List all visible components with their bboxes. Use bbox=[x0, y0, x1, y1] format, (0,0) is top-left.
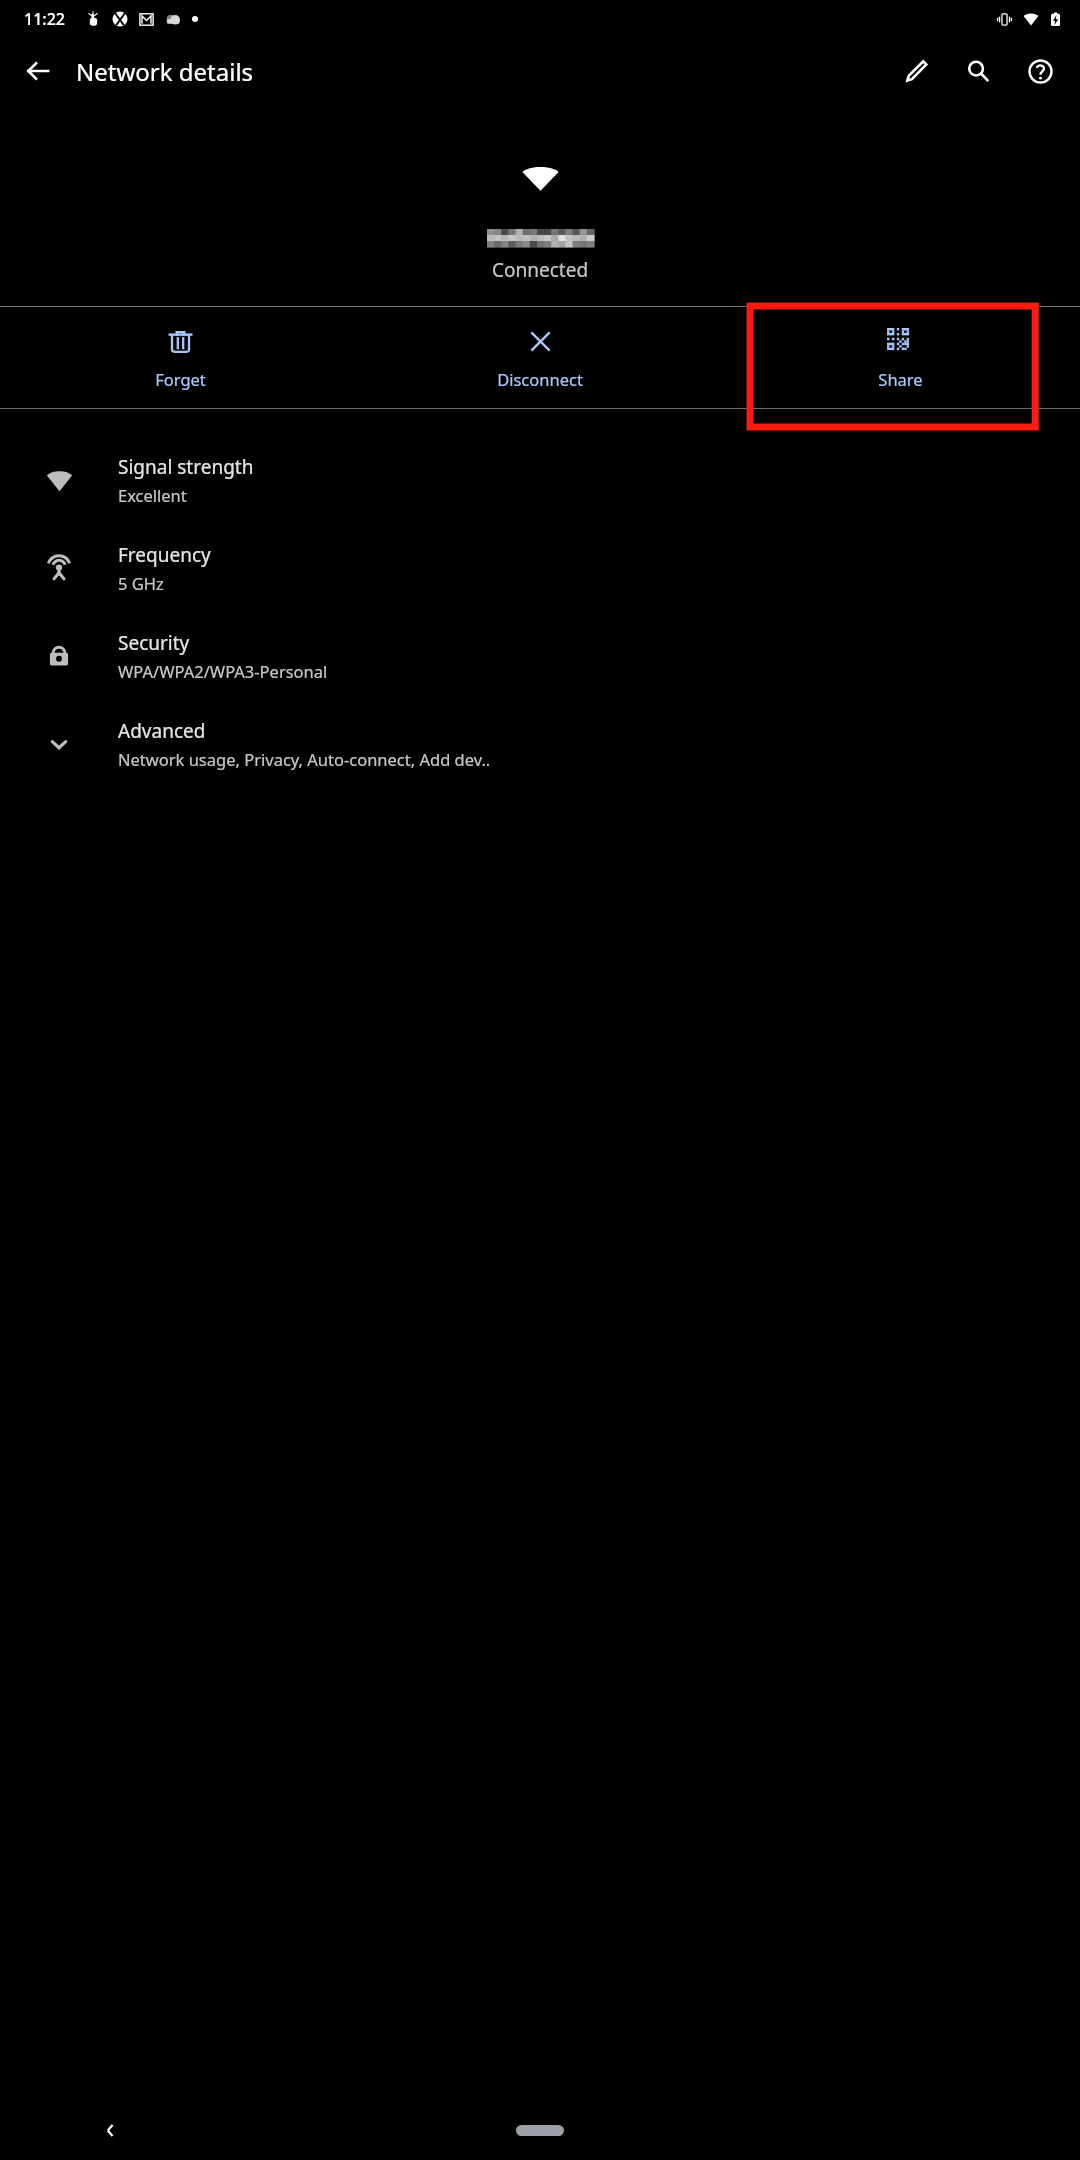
staticText: Network details bbox=[76, 55, 254, 88]
staticText: Disconnect bbox=[497, 368, 583, 390]
button[interactable]: Edit bbox=[890, 45, 942, 97]
button[interactable]: Share bbox=[720, 307, 1080, 408]
staticText: 5 GHz bbox=[118, 572, 164, 594]
button[interactable]: Disconnect bbox=[360, 307, 720, 408]
staticText: Share bbox=[878, 368, 923, 390]
button[interactable]: Home bbox=[516, 2125, 564, 2136]
button[interactable]: Signal strength bbox=[0, 436, 1080, 524]
button[interactable]: Help bbox=[1014, 45, 1066, 97]
button[interactable]: Forget bbox=[0, 307, 360, 408]
staticText: Advanced bbox=[118, 718, 206, 744]
staticText: Network usage, Privacy, Auto-connect, Ad… bbox=[118, 748, 491, 770]
staticText: WPA/WPA2/WPA3-Personal bbox=[118, 660, 328, 682]
button[interactable]: Security bbox=[0, 612, 1080, 700]
button[interactable]: Advanced bbox=[0, 700, 1080, 788]
button[interactable]: Frequency bbox=[0, 524, 1080, 612]
button[interactable]: Back bbox=[12, 45, 64, 97]
staticText: Signal strength bbox=[118, 454, 254, 480]
button[interactable]: Search bbox=[952, 45, 1004, 97]
staticText: Connected bbox=[492, 257, 589, 283]
staticText: Security bbox=[118, 630, 190, 656]
staticText: Forget bbox=[155, 368, 206, 390]
staticText: Frequency bbox=[118, 542, 211, 568]
staticText: Excellent bbox=[118, 484, 187, 506]
staticText: 11:22 bbox=[24, 8, 65, 30]
